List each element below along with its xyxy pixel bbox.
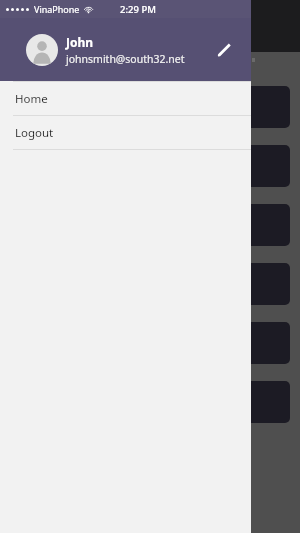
button[interactable]	[22, 322, 290, 364]
button[interactable]	[22, 86, 290, 128]
staticText: VinaPhone	[34, 3, 80, 15]
staticText: 2:29 PM	[120, 3, 156, 16]
button[interactable]	[22, 204, 290, 246]
staticText: Logout	[15, 125, 54, 141]
button[interactable]	[22, 263, 290, 305]
button[interactable]: John	[0, 18, 251, 81]
button[interactable]	[22, 145, 290, 187]
staticText: Home	[15, 91, 48, 107]
staticText: johnsmith@south32.net	[66, 52, 185, 66]
button[interactable]: Home	[0, 82, 251, 115]
button[interactable]	[22, 381, 290, 423]
staticText: John	[66, 34, 94, 50]
button[interactable]: Logout	[0, 116, 251, 149]
button[interactable]: Edit profile	[209, 35, 239, 65]
